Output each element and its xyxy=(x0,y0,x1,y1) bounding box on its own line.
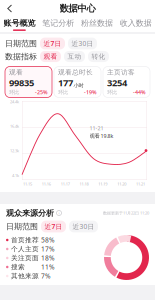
staticText: -25% xyxy=(35,89,48,96)
staticText: -44% xyxy=(133,89,146,96)
staticText: 其他来源 xyxy=(11,272,39,280)
staticText: i xyxy=(58,210,59,216)
staticText: 关注页面 xyxy=(11,254,39,262)
button[interactable]: 笔记分析 xyxy=(39,17,78,32)
staticText: 主页访客 xyxy=(107,68,135,76)
staticText: 177 xyxy=(58,76,73,89)
staticText: 粉丝数据 xyxy=(81,18,113,28)
staticText: 11% xyxy=(41,263,55,271)
staticText: 近30日 xyxy=(71,39,93,48)
staticText: 账号概览 xyxy=(3,18,35,28)
staticText: 环比 xyxy=(9,89,19,96)
staticText: 24.4k xyxy=(10,99,19,104)
staticText: 11-15 xyxy=(23,181,32,187)
staticText: 11-18 xyxy=(79,181,88,187)
staticText: 数据中心 xyxy=(59,3,95,14)
staticText: 观众来源分析 xyxy=(6,208,54,218)
staticText: 12.3k xyxy=(10,148,19,153)
staticText: 11-17 xyxy=(61,181,70,187)
staticText: 58% xyxy=(41,236,55,244)
button[interactable]: Back xyxy=(3,0,18,16)
button[interactable]: 转化 xyxy=(88,51,109,62)
staticText: 近30日 xyxy=(72,222,94,231)
button[interactable]: 账号概览 xyxy=(0,17,39,32)
button[interactable]: 互动 xyxy=(64,51,85,62)
staticText: 近7日 xyxy=(43,39,61,48)
staticText: 4.1k xyxy=(12,173,19,178)
button[interactable]: 粉丝数据 xyxy=(77,17,116,32)
staticText: 转化 xyxy=(91,52,105,61)
staticText: 互动 xyxy=(67,52,81,61)
staticText: 环比 xyxy=(58,89,68,96)
staticText: 3254 xyxy=(107,76,127,89)
staticText: 7% xyxy=(41,272,51,280)
staticText: 11-20 xyxy=(117,181,126,187)
staticText: 首页推荐 xyxy=(11,236,39,244)
staticText: 收入数据 xyxy=(120,18,152,28)
staticText: 搜索 xyxy=(11,263,25,271)
button[interactable]: 观看 xyxy=(5,66,52,97)
staticText: 11-21 xyxy=(136,181,145,187)
staticText: 近7日 xyxy=(44,222,62,231)
button[interactable]: 观看 xyxy=(40,51,61,62)
staticText: 笔记分析 xyxy=(42,18,74,28)
button[interactable]: 近7日 xyxy=(40,38,65,49)
staticText: 个人主页 xyxy=(11,245,39,253)
staticText: 11-16 xyxy=(42,181,51,187)
button[interactable]: 近30日 xyxy=(68,38,97,49)
button[interactable]: 观看总时长 xyxy=(54,66,101,97)
staticText: 16.4k xyxy=(10,124,19,129)
staticText: 观看 xyxy=(43,52,57,61)
staticText: 观看 19.8k xyxy=(89,132,113,139)
staticText: 环比 xyxy=(107,89,117,96)
staticText: 11-19 xyxy=(98,181,107,187)
staticText: -19% xyxy=(84,89,97,96)
button[interactable]: 收入数据 xyxy=(116,17,155,32)
staticText: 观看 xyxy=(9,68,23,76)
staticText: 99835 xyxy=(9,76,34,89)
staticText: 小时 xyxy=(73,82,83,89)
button[interactable]: 主页访客 xyxy=(103,66,150,97)
staticText: 数据更新于11月22日 11:20 xyxy=(103,210,149,216)
staticText: 18% xyxy=(41,254,55,262)
staticText: 日期范围 xyxy=(6,222,38,231)
button[interactable]: 近7日 xyxy=(41,221,66,232)
staticText: 观看总时长 xyxy=(58,68,93,76)
staticText: 17% xyxy=(41,245,55,253)
staticText: 日期范围 xyxy=(5,39,37,48)
button[interactable]: 近30日 xyxy=(69,221,98,232)
staticText: 11-21 xyxy=(89,125,103,132)
staticText: 数据指标 xyxy=(5,52,37,61)
